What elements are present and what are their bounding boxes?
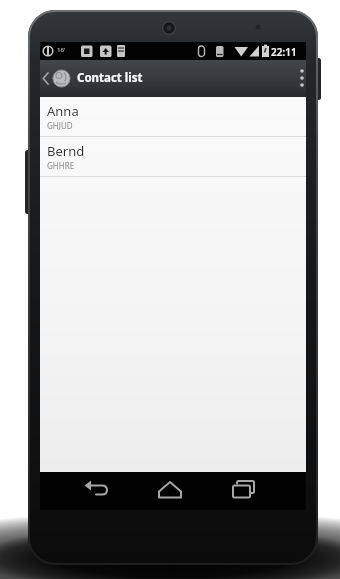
button[interactable]: Bernd	[40, 137, 306, 176]
staticText: GHJUD	[47, 120, 73, 131]
button[interactable]	[286, 60, 306, 97]
staticText: 16'	[57, 46, 66, 54]
staticText: Anna	[47, 102, 79, 120]
staticText: GHHRE	[47, 160, 75, 171]
staticText: Bernd	[47, 142, 85, 160]
staticText: Contact list	[77, 70, 143, 86]
button[interactable]	[219, 472, 267, 510]
staticText: 22:11	[271, 45, 297, 59]
button[interactable]	[75, 472, 123, 510]
button[interactable]	[146, 472, 194, 510]
button[interactable]	[40, 60, 74, 97]
button[interactable]: Anna	[40, 97, 306, 136]
